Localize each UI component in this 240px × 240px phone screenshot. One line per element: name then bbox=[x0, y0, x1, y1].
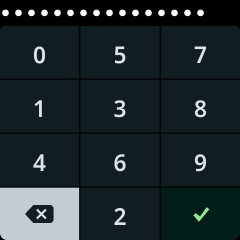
button[interactable]: 0 bbox=[0, 26, 79, 79]
button[interactable]: 8 bbox=[161, 80, 240, 132]
staticText: 1 bbox=[33, 93, 46, 123]
button[interactable]: 3 bbox=[80, 80, 159, 132]
staticText: 3 bbox=[113, 93, 126, 123]
staticText: 2 bbox=[113, 201, 126, 231]
button[interactable]: 9 bbox=[161, 134, 240, 186]
staticText: 9 bbox=[194, 147, 207, 177]
button[interactable]: Confirm bbox=[161, 188, 240, 240]
staticText: 6 bbox=[113, 147, 126, 177]
button[interactable]: 6 bbox=[80, 134, 159, 186]
staticText: 5 bbox=[113, 39, 126, 70]
button[interactable]: 4 bbox=[0, 134, 79, 186]
button[interactable]: 2 bbox=[80, 188, 159, 240]
staticText: 4 bbox=[33, 147, 46, 177]
staticText: 7 bbox=[194, 39, 207, 70]
button[interactable]: 5 bbox=[80, 26, 159, 79]
button[interactable]: Delete bbox=[0, 188, 79, 240]
staticText: 0 bbox=[33, 39, 46, 70]
staticText: 8 bbox=[194, 93, 207, 123]
button[interactable]: 7 bbox=[161, 26, 240, 79]
button[interactable]: 1 bbox=[0, 80, 79, 132]
